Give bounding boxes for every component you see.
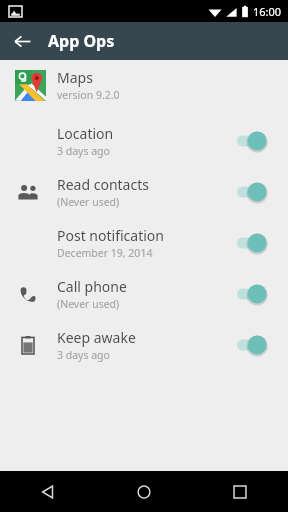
staticText: December 19, 2014 [57,246,153,260]
button[interactable]: Back [6,25,38,57]
button[interactable]: Post notification [0,217,288,268]
staticText: Keep awake [57,328,136,347]
staticText: version 9.2.0 [57,88,120,102]
staticText: App Ops [48,30,115,52]
staticText: 3 days ago [57,348,110,362]
staticText: Call phone [57,277,127,296]
button[interactable]: Back [0,471,96,512]
staticText: 16:00 [253,4,282,19]
button[interactable]: Recent apps [192,471,288,512]
button[interactable]: Read contacts [0,166,288,217]
button[interactable]: Home [96,471,192,512]
button[interactable]: Location toggle [234,127,274,155]
button[interactable]: Read contacts toggle [234,178,274,206]
staticText: 3 days ago [57,144,110,158]
staticText: Read contacts [57,175,149,194]
staticText: Location [57,124,114,143]
button[interactable]: Call phone toggle [234,280,274,308]
button[interactable]: Maps [0,60,288,110]
button[interactable]: Keep awake toggle [234,331,274,359]
staticText: (Never used) [57,297,120,311]
button[interactable]: Post notification toggle [234,229,274,257]
staticText: (Never used) [57,195,120,209]
button[interactable]: Location [0,115,288,166]
staticText: Post notification [57,226,164,245]
staticText: Maps [57,68,93,87]
button[interactable]: Call phone [0,268,288,319]
button[interactable]: Keep awake [0,319,288,370]
